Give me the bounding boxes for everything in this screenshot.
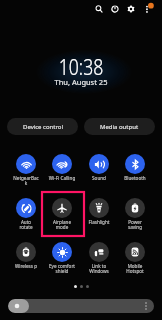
button[interactable]: Settings [124,2,138,16]
staticText: Eye comfort shield [45,263,79,275]
button[interactable]: Sound [82,154,116,181]
staticText: Link to Windows [82,263,116,275]
button[interactable]: Power saving [118,198,152,231]
button[interactable]: Device control [7,118,78,135]
staticText: Thu, August 25 [0,77,162,87]
button[interactable] [8,299,154,313]
button[interactable]: NetgearBac k [9,154,43,187]
staticText: Wireless p [9,263,43,269]
button[interactable]: Wi-Fi Calling [45,154,79,181]
staticText: NetgearBac k [9,175,43,187]
staticText: Auto rotate [9,219,43,231]
staticText: Device control [23,123,63,131]
button[interactable]: Search [92,2,106,16]
staticText: Airplane mode [45,219,79,231]
button[interactable]: Eye comfort shield [45,242,79,275]
button[interactable]: Media output [84,118,155,135]
button[interactable]: Flashlight [82,198,116,225]
button[interactable]: Power [108,2,122,16]
button[interactable]: Airplane mode [45,198,79,231]
staticText: Wi-Fi Calling [45,175,79,181]
button[interactable]: Link to Windows [82,242,116,275]
staticText: Flashlight [82,219,116,225]
button[interactable]: Bluetooth [118,154,152,181]
button[interactable]: Wireless p [9,242,43,269]
staticText: Media output [100,123,139,131]
staticText: 10:38 [16,51,146,81]
button[interactable]: Mobile Hotspot [118,242,152,275]
button[interactable]: Auto rotate [9,198,43,231]
staticText: Bluetooth [118,175,152,181]
staticText: Mobile Hotspot [118,263,152,275]
staticText: Sound [82,175,116,181]
staticText: Power saving [118,219,152,231]
button[interactable]: More options [141,1,157,17]
